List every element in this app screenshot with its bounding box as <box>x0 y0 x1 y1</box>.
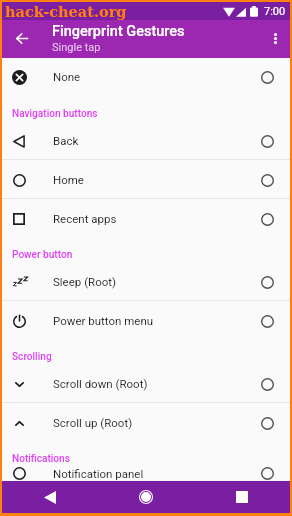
staticText: Notifications <box>12 453 70 465</box>
staticText: Power button <box>12 249 73 261</box>
button[interactable]: More options <box>262 20 288 58</box>
button[interactable]: None <box>2 58 290 95</box>
button[interactable]: Power button menu <box>2 301 290 340</box>
staticText: Scrolling <box>12 351 52 363</box>
button[interactable]: Sleep (Root) <box>2 262 290 301</box>
staticText: Recent apps <box>53 212 117 225</box>
button[interactable]: Home <box>2 160 290 199</box>
button[interactable]: Navigate up <box>4 20 40 58</box>
button[interactable]: Back <box>2 481 98 513</box>
staticText: hack-cheat.org <box>5 3 127 20</box>
staticText: Scroll down (Root) <box>53 377 148 390</box>
staticText: Notification panel <box>53 467 144 480</box>
button[interactable]: Recent apps <box>194 481 290 513</box>
staticText: 7:00 <box>264 5 286 18</box>
staticText: Home <box>53 173 84 186</box>
staticText: Power button menu <box>53 314 154 327</box>
button[interactable]: Home <box>98 481 194 513</box>
staticText: Scroll up (Root) <box>53 416 133 429</box>
staticText: Navigation buttons <box>12 108 98 120</box>
staticText: Sleep (Root) <box>53 275 117 288</box>
button[interactable]: Scroll up (Root) <box>2 403 290 442</box>
staticText: Back <box>53 134 79 147</box>
staticText: None <box>53 70 81 83</box>
button[interactable]: Back <box>2 121 290 160</box>
button[interactable]: Scroll down (Root) <box>2 364 290 403</box>
button[interactable]: Recent apps <box>2 199 290 238</box>
button[interactable]: Notification panel <box>2 466 290 481</box>
staticText: Single tap <box>52 41 101 54</box>
staticText: Fingerprint Gestures <box>52 23 185 40</box>
